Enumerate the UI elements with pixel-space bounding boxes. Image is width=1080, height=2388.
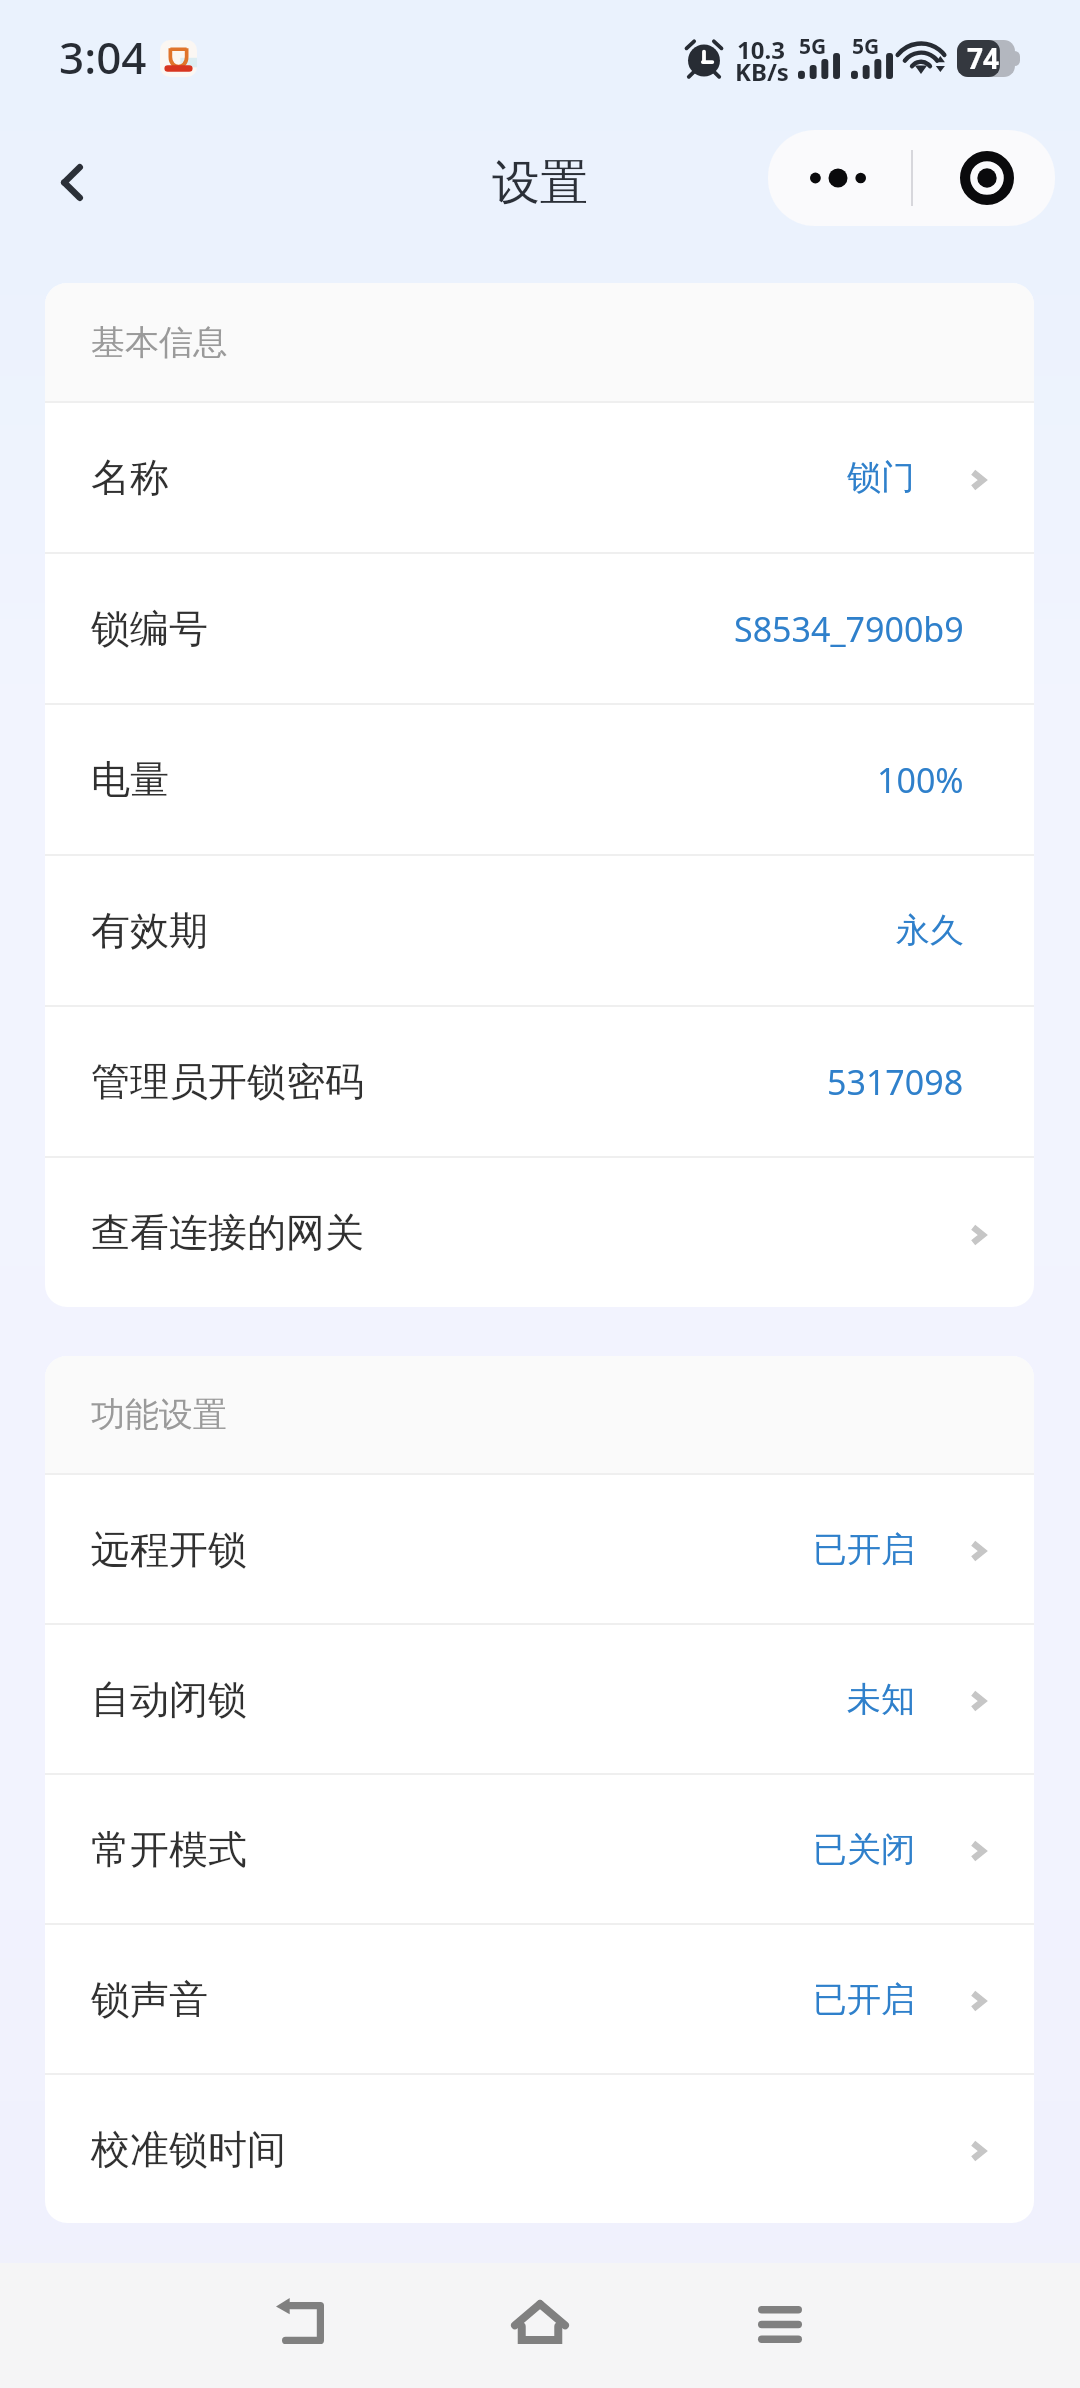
staticText: 有效期 (91, 906, 208, 955)
staticText: 电量 (91, 755, 169, 804)
staticText: 已开启 (813, 1978, 915, 2021)
staticText: 3:04 (59, 27, 147, 87)
staticText: 自动闭锁 (91, 1675, 247, 1724)
button[interactable]: 电量 (45, 705, 1034, 854)
button[interactable]: Menu (720, 2263, 840, 2388)
button[interactable]: 自动闭锁 (45, 1625, 1034, 1773)
button[interactable]: 管理员开锁密码 (45, 1007, 1034, 1156)
staticText: 已关闭 (813, 1828, 915, 1871)
staticText: 74 (967, 39, 1000, 76)
button[interactable]: More options (768, 130, 911, 226)
button[interactable]: 锁声音 (45, 1925, 1034, 2073)
button[interactable]: Back (24, 134, 120, 230)
button[interactable]: 有效期 (45, 856, 1034, 1005)
staticText: KB/s (735, 55, 789, 88)
button[interactable]: Close (913, 130, 1055, 226)
staticText: 永久 (896, 909, 964, 952)
staticText: 锁编号 (91, 604, 208, 653)
staticText: 远程开锁 (91, 1525, 247, 1574)
staticText: 锁声音 (91, 1975, 208, 2024)
button[interactable]: 远程开锁 (45, 1475, 1034, 1623)
staticText: 基本信息 (91, 321, 227, 364)
staticText: 5G (799, 32, 827, 61)
button[interactable]: Back (240, 2263, 360, 2388)
staticText: 名称 (91, 453, 169, 502)
staticText: 锁门 (847, 456, 915, 499)
button[interactable]: 校准锁时间 (45, 2075, 1034, 2223)
button[interactable]: 名称 (45, 403, 1034, 552)
staticText: 功能设置 (91, 1393, 227, 1436)
staticText: S8534_7900b9 (734, 606, 964, 652)
staticText: 未知 (847, 1678, 915, 1721)
staticText: 设置 (492, 153, 588, 213)
button[interactable]: 常开模式 (45, 1775, 1034, 1923)
staticText: 查看连接的网关 (91, 1208, 364, 1257)
staticText: 管理员开锁密码 (91, 1057, 364, 1106)
staticText: 5G (852, 32, 880, 61)
staticText: 常开模式 (91, 1825, 247, 1874)
staticText: 已开启 (813, 1528, 915, 1571)
staticText: 100% (877, 757, 964, 803)
staticText: 10.3 (737, 33, 785, 66)
button[interactable]: 查看连接的网关 (45, 1158, 1034, 1307)
button[interactable]: Home (480, 2263, 600, 2388)
button[interactable]: 锁编号 (45, 554, 1034, 703)
staticText: 5317098 (827, 1059, 964, 1105)
staticText: 校准锁时间 (91, 2125, 286, 2174)
